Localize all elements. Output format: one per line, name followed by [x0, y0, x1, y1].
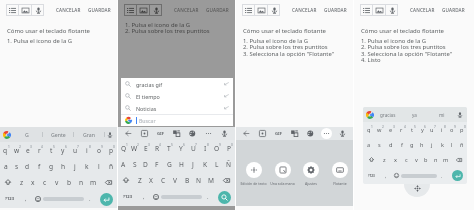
button[interactable]: Ajustes [297, 162, 324, 186]
button[interactable]: d [385, 137, 396, 152]
button[interactable]: z [16, 174, 27, 190]
button[interactable]: K [199, 156, 211, 172]
button[interactable]: h [57, 158, 69, 174]
button[interactable]: CANCELAR [174, 7, 199, 13]
button[interactable]: Space [43, 197, 84, 201]
button[interactable]: ya [401, 107, 428, 122]
button[interactable]: n [75, 174, 87, 190]
button[interactable]: u [427, 122, 437, 137]
button[interactable]: J [187, 156, 199, 172]
button[interactable]: Space [161, 195, 202, 199]
button[interactable]: GUARDAR [324, 7, 347, 13]
button[interactable]: CANCELAR [410, 7, 435, 13]
button[interactable]: y [57, 142, 69, 158]
button[interactable]: Voice recording [32, 4, 44, 16]
button[interactable]: q [363, 122, 374, 137]
button[interactable]: u [69, 142, 81, 158]
button[interactable]: v [411, 152, 421, 167]
button[interactable]: Voice recording [268, 4, 280, 16]
button[interactable]: Voice input [337, 128, 348, 139]
button[interactable]: v [51, 174, 63, 190]
button[interactable]: j [427, 137, 437, 152]
button[interactable]: b [421, 152, 431, 167]
button[interactable]: mi [428, 107, 455, 122]
button[interactable]: b [63, 174, 75, 190]
button[interactable]: Backspace [451, 152, 467, 167]
button[interactable]: l [447, 137, 457, 152]
button[interactable]: Insert image [255, 4, 267, 16]
button[interactable]: V [169, 172, 181, 188]
button[interactable]: Move keyboard [404, 184, 430, 197]
button[interactable]: t [45, 142, 57, 158]
button[interactable]: E [140, 140, 151, 156]
button[interactable]: m [441, 152, 451, 167]
button[interactable]: U [187, 140, 199, 156]
button[interactable]: Voice recording [150, 4, 162, 16]
button[interactable]: Gente [43, 127, 73, 142]
button[interactable]: T [163, 140, 175, 156]
button[interactable]: p [457, 122, 467, 137]
button[interactable]: GUARDAR [88, 7, 111, 13]
button[interactable]: t [407, 122, 417, 137]
button[interactable]: ?123 [0, 190, 19, 208]
button[interactable]: Enter [100, 193, 113, 206]
button[interactable]: Sticker [257, 128, 268, 139]
button[interactable]: N [193, 172, 205, 188]
button[interactable]: Y [175, 140, 187, 156]
button[interactable]: Back [123, 128, 134, 139]
button[interactable]: h [417, 137, 427, 152]
button[interactable]: Emoji [150, 188, 161, 206]
button[interactable]: p [105, 142, 117, 158]
button[interactable]: k [81, 158, 93, 174]
button[interactable]: R [151, 140, 163, 156]
button[interactable]: o [447, 122, 457, 137]
button[interactable]: S [129, 156, 140, 172]
button[interactable]: f [396, 137, 407, 152]
button[interactable]: e [22, 142, 33, 158]
button[interactable]: Voice input [455, 107, 464, 122]
button[interactable]: g [45, 158, 57, 174]
button[interactable]: i [437, 122, 447, 137]
button[interactable]: i [81, 142, 93, 158]
button[interactable]: d [22, 158, 33, 174]
button[interactable]: Noticias [121, 102, 233, 114]
button[interactable]: F [151, 156, 163, 172]
button[interactable]: Gran [74, 127, 104, 142]
button[interactable]: Checklist [124, 4, 136, 16]
button[interactable]: c [39, 174, 51, 190]
button[interactable]: q [0, 142, 11, 158]
button[interactable]: gracias gif [121, 78, 233, 90]
button[interactable]: P [223, 140, 235, 156]
button[interactable]: Translate [171, 128, 182, 139]
button[interactable]: A [118, 156, 129, 172]
button[interactable]: B [181, 172, 193, 188]
button[interactable]: z [379, 152, 390, 167]
button[interactable]: Voice recording [386, 4, 398, 16]
button[interactable]: f [33, 158, 45, 174]
button[interactable]: w [374, 122, 385, 137]
button[interactable]: Una sola mano [269, 162, 296, 186]
button[interactable]: Insert image [373, 4, 385, 16]
button[interactable]: Enter [452, 170, 463, 181]
button[interactable]: D [140, 156, 151, 172]
button[interactable]: Period [437, 167, 447, 184]
button[interactable]: x [390, 152, 401, 167]
button[interactable]: r [33, 142, 45, 158]
button[interactable]: G [11, 127, 42, 142]
button[interactable]: k [437, 137, 447, 152]
button[interactable]: Q [118, 140, 129, 156]
button[interactable]: Emoji [391, 167, 401, 184]
button[interactable]: a [0, 158, 11, 174]
button[interactable]: Theme [187, 128, 198, 139]
button[interactable]: Theme [305, 128, 316, 139]
button[interactable]: GUARDAR [206, 7, 229, 13]
button[interactable]: Checklist [6, 4, 18, 16]
button[interactable]: Space [401, 174, 437, 178]
button[interactable]: Search [218, 191, 231, 204]
button[interactable]: Voice input [105, 127, 114, 142]
button[interactable]: ñ [457, 137, 467, 152]
button[interactable]: Google search [366, 111, 374, 119]
button[interactable]: C [157, 172, 169, 188]
button[interactable]: Backspace [99, 174, 117, 190]
button[interactable]: Shift [363, 152, 379, 167]
